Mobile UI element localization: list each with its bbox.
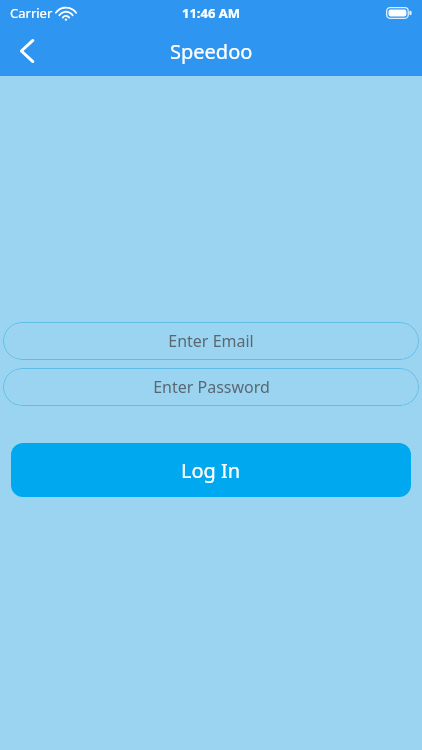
other: Battery full — [386, 7, 412, 19]
staticText: Log In — [181, 457, 241, 484]
button[interactable]: Enter Email — [3, 322, 419, 360]
staticText: 11:46 AM — [182, 4, 241, 22]
staticText: Speedoo — [170, 38, 253, 65]
button[interactable]: Log In — [11, 443, 411, 497]
staticText: Enter Password — [153, 376, 270, 398]
staticText: Carrier — [10, 4, 53, 22]
staticText: Enter Email — [168, 330, 254, 352]
button[interactable]: Back — [0, 26, 56, 76]
button[interactable]: Enter Password — [3, 368, 419, 406]
